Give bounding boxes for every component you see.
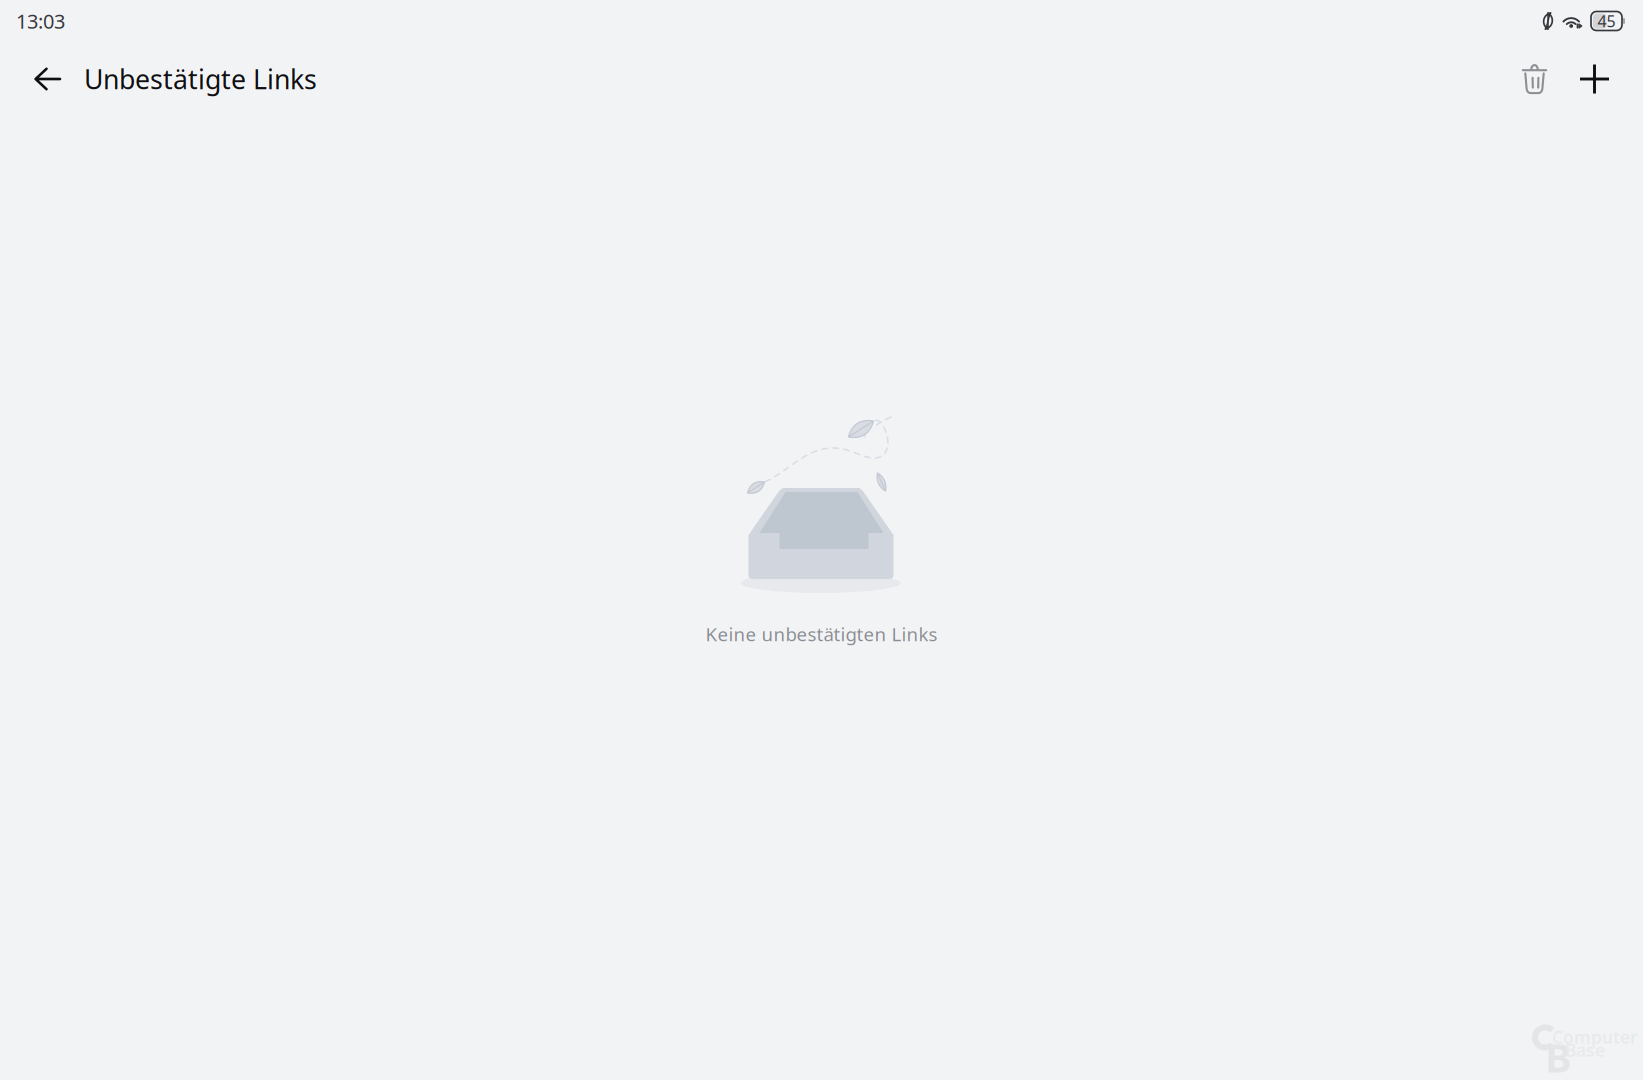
staticText: Computer <box>1552 1025 1638 1048</box>
staticText: B <box>1545 1030 1572 1080</box>
button[interactable]: Zurück <box>17 51 73 107</box>
button[interactable]: Löschen <box>1506 51 1563 107</box>
staticText: Unbestätigte Links <box>84 61 317 97</box>
staticText: Keine unbestätigten Links <box>705 622 937 646</box>
button[interactable]: Hinzufügen <box>1563 51 1624 107</box>
staticText: Base <box>1565 1038 1605 1061</box>
staticText: 13:03 <box>16 8 65 34</box>
staticText: 45 <box>1597 10 1615 32</box>
